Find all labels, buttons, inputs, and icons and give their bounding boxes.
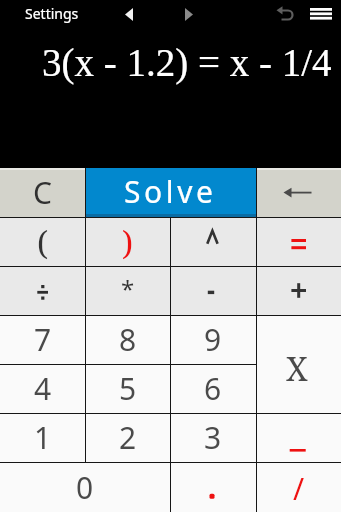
button[interactable] [170,266,256,315]
staticText: 2 [119,417,137,458]
staticText: 3(x - 1.2) = x - 1/4 [42,41,332,84]
button[interactable] [256,217,341,266]
button[interactable]: Settings [25,4,79,23]
staticText: ) [122,221,134,265]
button[interactable]: 6 [170,364,256,413]
button[interactable] [256,168,341,217]
button[interactable] [256,413,341,462]
staticText: X [286,346,308,391]
button[interactable] [310,8,333,21]
button[interactable]: X [256,315,341,413]
staticText: 5 [119,368,137,409]
staticText: 3 [204,417,222,458]
button[interactable]: 3 [170,413,256,462]
button[interactable] [256,266,341,315]
staticText: / [293,468,305,509]
staticText: 7 [34,319,52,360]
staticText: 4 [34,368,52,409]
staticText: 6 [204,368,222,409]
button[interactable]: 1 [0,413,85,462]
button[interactable]: ( [0,217,85,266]
button[interactable]: Solve [85,168,256,217]
button[interactable]: ) [85,217,170,266]
button[interactable]: 8 [85,315,170,364]
button[interactable]: / [256,462,341,512]
button[interactable]: C [0,168,85,217]
staticText: Solve [124,171,217,212]
staticText: * [121,272,135,305]
button[interactable] [0,266,85,315]
button[interactable]: 9 [170,315,256,364]
button[interactable]: 0 [0,462,170,512]
button[interactable]: 2 [85,413,170,462]
button[interactable] [180,6,198,23]
button[interactable] [170,462,256,512]
button[interactable] [170,217,256,266]
button[interactable]: * [85,266,170,315]
button[interactable]: 5 [85,364,170,413]
staticText: 1 [34,417,52,458]
button[interactable] [120,6,138,23]
button[interactable]: 7 [0,315,85,364]
staticText: 0 [76,467,94,508]
button[interactable]: 4 [0,364,85,413]
staticText: ( [37,221,49,265]
staticText: 9 [204,319,222,360]
staticText: C [33,172,52,213]
button[interactable] [272,2,296,26]
staticText: 8 [119,319,137,360]
